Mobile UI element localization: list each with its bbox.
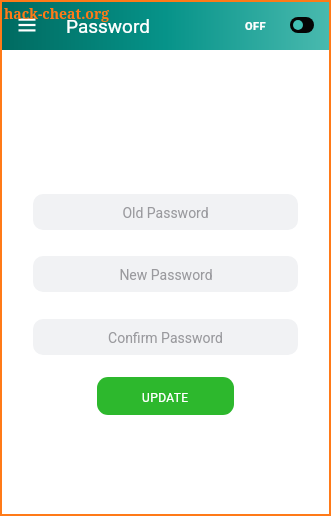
button[interactable]: Confirm Password <box>33 319 298 355</box>
staticText: New Password <box>119 267 213 283</box>
button[interactable]: Toggle password <box>290 17 314 33</box>
button[interactable]: New Password <box>33 256 298 292</box>
staticText: OFF <box>245 20 267 33</box>
staticText: Old Password <box>122 205 209 221</box>
button[interactable]: UPDATE <box>97 377 234 415</box>
staticText: Password <box>66 15 150 37</box>
staticText: Confirm Password <box>108 330 223 346</box>
button[interactable]: Old Password <box>33 194 298 230</box>
button[interactable]: Menu <box>14 12 40 38</box>
staticText: hack-cheat.org <box>4 4 110 23</box>
staticText: UPDATE <box>142 391 189 405</box>
